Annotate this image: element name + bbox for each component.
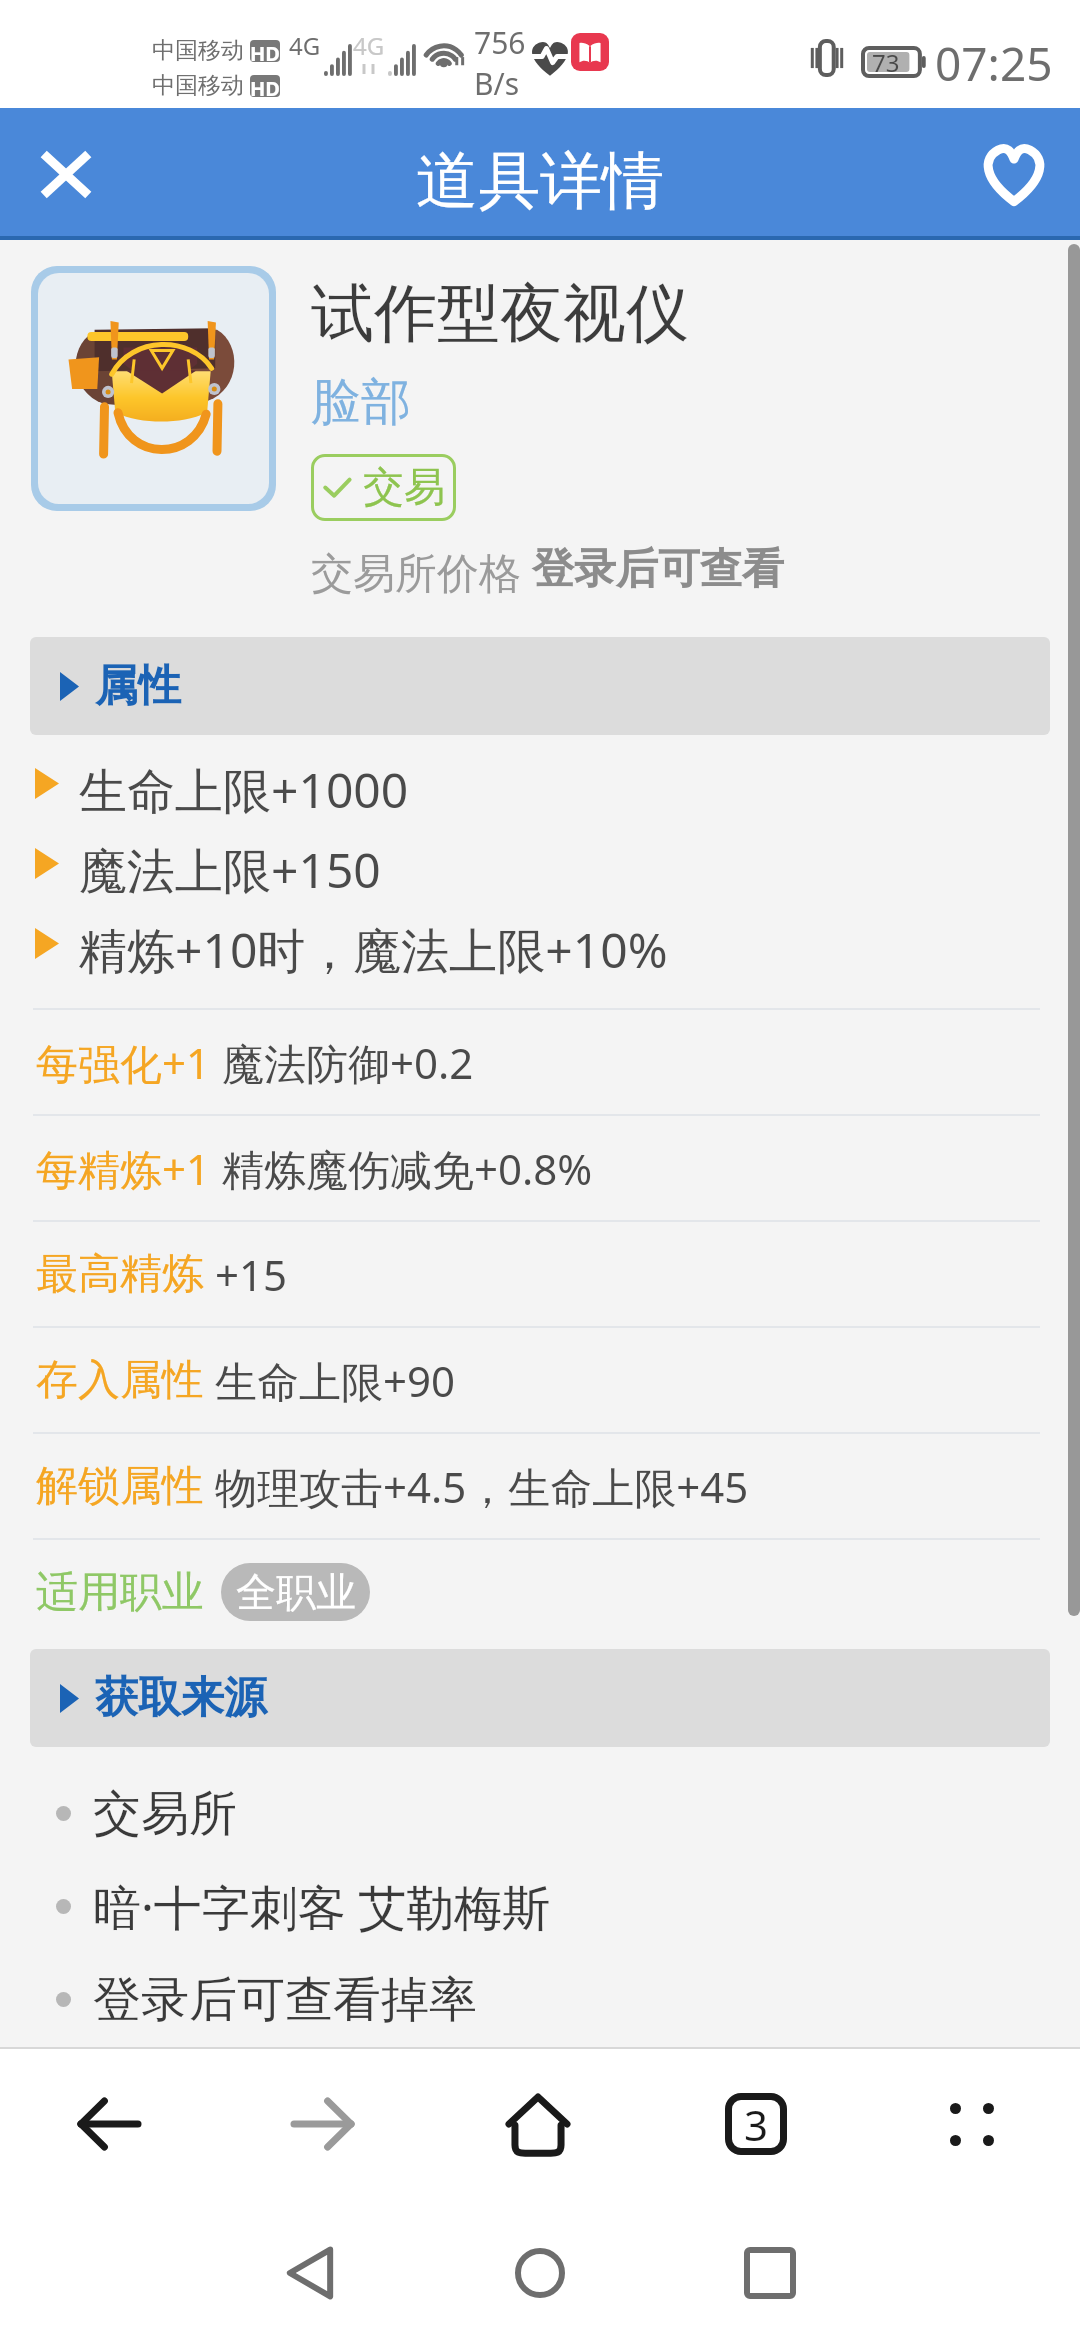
- button[interactable]: Forward: [264, 2064, 384, 2184]
- staticText: 获取来源: [95, 1671, 267, 1725]
- staticText: 中国移动: [152, 71, 244, 100]
- staticText: 精炼+10时，魔法上限+10%: [79, 917, 668, 983]
- staticText: 物理攻击+4.5，生命上限+45: [204, 1458, 749, 1515]
- staticText: 交易所: [93, 1784, 237, 1844]
- staticText: 全职业: [236, 1567, 356, 1617]
- staticText: 试作型夜视仪: [311, 274, 689, 353]
- button[interactable]: Home: [478, 2064, 598, 2184]
- button[interactable]: Tabs: [696, 2064, 816, 2184]
- button[interactable]: Close: [20, 128, 112, 220]
- staticText: 07:25: [935, 32, 1053, 95]
- staticText: +15: [204, 1246, 287, 1303]
- staticText: HD: [250, 75, 280, 97]
- staticText: 道具详情: [416, 142, 664, 220]
- button[interactable]: Back: [195, 2205, 425, 2340]
- staticText: 3: [744, 2096, 769, 2153]
- staticText: 交易: [363, 462, 445, 514]
- button[interactable]: Favorite: [966, 126, 1062, 222]
- staticText: 精炼魔伤减免+0.8%: [211, 1140, 593, 1197]
- button[interactable]: Recents: [655, 2205, 885, 2340]
- staticText: 登录后可查看掉率: [93, 1970, 477, 2030]
- button[interactable]: Back: [48, 2064, 168, 2184]
- staticText: 756: [474, 22, 526, 63]
- staticText: 暗·十字刺客 艾勒梅斯: [93, 1874, 551, 1940]
- staticText: 魔法上限+150: [79, 837, 381, 903]
- staticText: 4G: [353, 29, 385, 62]
- button[interactable]: Home: [425, 2205, 655, 2340]
- staticText: 登录后可查看: [532, 543, 784, 596]
- staticText: 魔法防御+0.2: [211, 1034, 474, 1091]
- staticText: B/s: [474, 63, 520, 104]
- staticText: 中国移动: [152, 36, 244, 65]
- staticText: 交易所价格: [311, 543, 532, 600]
- staticText: 属性: [95, 659, 181, 713]
- staticText: 73: [872, 46, 900, 76]
- staticText: 每强化+1: [36, 1034, 211, 1091]
- staticText: 存入属性: [36, 1354, 204, 1407]
- staticText: 每精炼+1: [36, 1140, 211, 1197]
- staticText: HD: [250, 40, 280, 62]
- staticText: 生命上限+1000: [79, 757, 409, 823]
- staticText: 解锁属性: [36, 1460, 204, 1513]
- button[interactable]: More: [912, 2064, 1032, 2184]
- staticText: 4G: [289, 29, 321, 62]
- staticText: 适用职业: [36, 1566, 204, 1619]
- staticText: 脸部: [311, 371, 411, 434]
- staticText: 生命上限+90: [204, 1352, 455, 1409]
- staticText: 最高精炼: [36, 1248, 204, 1301]
